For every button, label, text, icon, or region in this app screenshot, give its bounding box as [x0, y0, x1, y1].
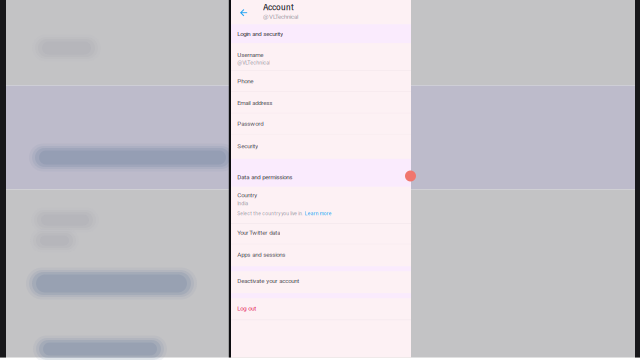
button[interactable]: Username	[231, 43, 411, 70]
staticText: Deactivate your account	[237, 277, 299, 284]
button[interactable]: Password	[231, 113, 411, 134]
staticText: Apps and sessions	[237, 251, 285, 258]
staticText: Password	[237, 120, 263, 127]
staticText: Phone	[237, 78, 253, 85]
button[interactable]: Apps and sessions	[231, 244, 411, 266]
staticText: Select the country you live in.	[237, 211, 303, 216]
button[interactable]: Country	[231, 187, 411, 223]
staticText: Security	[237, 142, 258, 150]
staticText: Login and security	[237, 30, 283, 37]
staticText: @VLTechnical	[237, 59, 270, 66]
button[interactable]: Your Twitter data	[231, 224, 411, 244]
staticText: Your Twitter data	[237, 229, 280, 236]
button[interactable]: Back	[236, 5, 252, 21]
button[interactable]: Email address	[231, 92, 411, 113]
button[interactable]: Phone	[231, 71, 411, 91]
staticText: Email address	[237, 99, 272, 106]
staticText: Username	[237, 51, 263, 58]
staticText: @VLTechnical	[263, 13, 298, 20]
staticText: Country	[237, 192, 257, 199]
staticText: Log out	[237, 305, 256, 312]
staticText: Account	[263, 2, 294, 12]
button[interactable]: Security	[231, 134, 411, 159]
staticText: India	[237, 200, 248, 206]
button[interactable]: Log out	[231, 298, 411, 320]
staticText: Learn more	[305, 211, 332, 216]
button[interactable]: Deactivate your account	[231, 271, 411, 293]
staticText: Data and permissions	[237, 174, 292, 181]
